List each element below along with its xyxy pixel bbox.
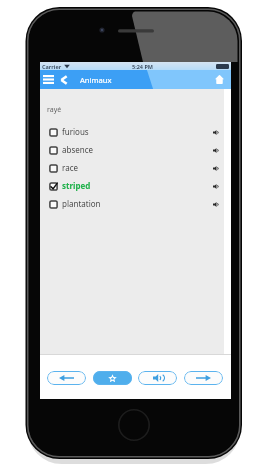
button[interactable]: Play pronunciation [211,143,221,157]
staticText: rayé [47,105,62,115]
staticText: furious [62,126,89,137]
staticText: race [62,162,78,173]
staticText: Animaux [80,75,112,85]
button[interactable]: Previous [47,371,86,385]
button[interactable]: striped [40,177,231,195]
button[interactable]: Next [184,371,223,385]
staticText: plantation [62,198,101,209]
button[interactable]: Play sound [138,371,177,385]
button[interactable]: race [40,159,231,177]
button[interactable]: Play pronunciation [211,179,221,193]
button[interactable]: Back [58,70,70,89]
staticText: Carrier [42,63,62,70]
button[interactable]: absence [40,141,231,159]
button[interactable]: furious [40,123,231,141]
button[interactable]: Home [211,70,227,89]
button[interactable]: Play pronunciation [211,161,221,175]
button[interactable]: Menu [42,70,55,89]
button[interactable]: Play pronunciation [211,125,221,139]
staticText: striped [62,180,91,191]
staticText: absence [62,144,94,155]
button[interactable]: Play pronunciation [211,197,221,211]
button[interactable]: plantation [40,195,231,213]
staticText: 5:24 PM [132,63,154,70]
button[interactable]: Favourite [93,371,132,385]
